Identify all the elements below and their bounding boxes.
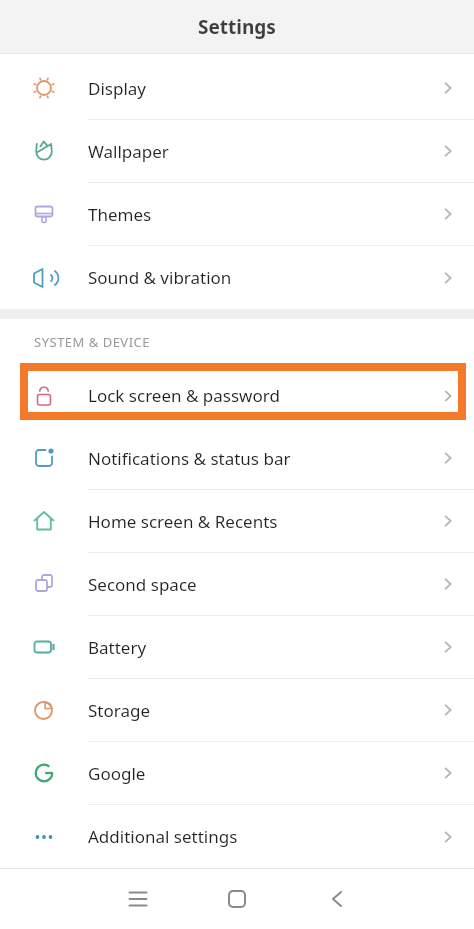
staticText: Settings (198, 14, 276, 40)
staticText: Storage (88, 699, 442, 722)
button[interactable]: Home screen & Recents (0, 490, 474, 553)
button[interactable]: Lock screen & password (0, 364, 474, 427)
staticText: Additional settings (88, 825, 442, 848)
button[interactable]: Additional settings (0, 805, 474, 868)
button[interactable] (225, 887, 249, 911)
button[interactable]: Display (0, 57, 474, 120)
staticText: Themes (88, 203, 442, 226)
button[interactable]: Wallpaper (0, 120, 474, 183)
button[interactable] (325, 887, 349, 911)
button[interactable]: Battery (0, 616, 474, 679)
staticText: Second space (88, 573, 442, 596)
staticText: SYSTEM & DEVICE (34, 333, 151, 351)
staticText: Battery (88, 636, 442, 659)
button[interactable] (126, 887, 150, 911)
staticText: Google (88, 762, 442, 785)
button[interactable]: Sound & vibration (0, 246, 474, 309)
button[interactable]: Notifications & status bar (0, 427, 474, 490)
staticText: Display (88, 77, 442, 100)
button[interactable]: Themes (0, 183, 474, 246)
button[interactable]: Storage (0, 679, 474, 742)
staticText: Home screen & Recents (88, 510, 442, 533)
staticText: Lock screen & password (88, 384, 442, 407)
button[interactable]: Google (0, 742, 474, 805)
button[interactable]: Second space (0, 553, 474, 616)
staticText: Notifications & status bar (88, 447, 442, 470)
staticText: Sound & vibration (88, 266, 442, 289)
staticText: Wallpaper (88, 140, 442, 163)
